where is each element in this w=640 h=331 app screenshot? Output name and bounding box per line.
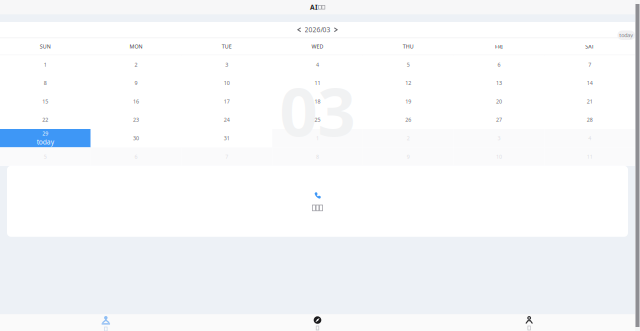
staticText: 03 [279,66,355,155]
staticText: FRI [495,43,503,50]
staticText: 30 [133,135,139,142]
staticText: WED [311,43,323,50]
staticText: 20 [496,98,502,105]
staticText: 1 [316,135,319,142]
staticText: 26 [405,116,411,123]
staticText: 19 [405,98,411,105]
staticText: 31 [224,135,230,142]
staticText: 6 [497,61,500,68]
staticText: today [619,32,633,39]
staticText: 14 [587,79,593,87]
button[interactable]: Next month [330,26,341,34]
staticText: 10 [224,79,230,87]
staticText: 9 [135,79,138,87]
staticText: 29 [42,130,48,137]
staticText: 22 [42,116,48,123]
staticText: 7 [225,153,228,160]
staticText: 7 [588,61,591,68]
button[interactable]: Discover [212,314,423,331]
staticText: 5 [44,153,47,160]
staticText: 15 [42,98,48,105]
staticText: AI [310,3,318,12]
button[interactable]: Profile [423,314,635,331]
staticText: 16 [133,98,139,105]
staticText: 2026/03 [304,25,330,34]
staticText: 3 [497,135,500,142]
staticText: 10 [496,153,502,160]
staticText: 18 [314,98,320,105]
staticText: TUE [222,43,232,50]
staticText: 13 [496,79,502,87]
staticText: 2 [407,135,410,142]
staticText: MON [130,43,143,50]
staticText: 11 [587,153,593,160]
staticText: 21 [587,98,593,105]
staticText: 25 [314,116,320,123]
staticText: 8 [316,153,319,160]
staticText: 28 [587,116,593,123]
staticText: 1 [44,61,47,68]
staticText: 12 [405,79,411,87]
staticText: 24 [224,116,230,123]
staticText: 4 [316,61,319,68]
button[interactable]: Jump to today [617,30,635,40]
staticText: 8 [44,79,47,87]
button[interactable]: Previous month [294,26,304,34]
staticText: 23 [133,116,139,123]
staticText: today [37,138,54,146]
button[interactable]: Schedule [0,314,212,331]
staticText: 6 [135,153,138,160]
staticText: SUN [40,43,51,50]
staticText: 2 [135,61,138,68]
staticText: 4 [588,135,591,142]
staticText: 11 [314,79,320,87]
staticText: 27 [496,116,502,123]
staticText: THU [403,43,414,50]
staticText: 5 [407,61,410,68]
staticText: 3 [225,61,228,68]
staticText: 17 [224,98,230,105]
staticText: SAT [585,43,594,50]
staticText: 9 [407,153,410,160]
